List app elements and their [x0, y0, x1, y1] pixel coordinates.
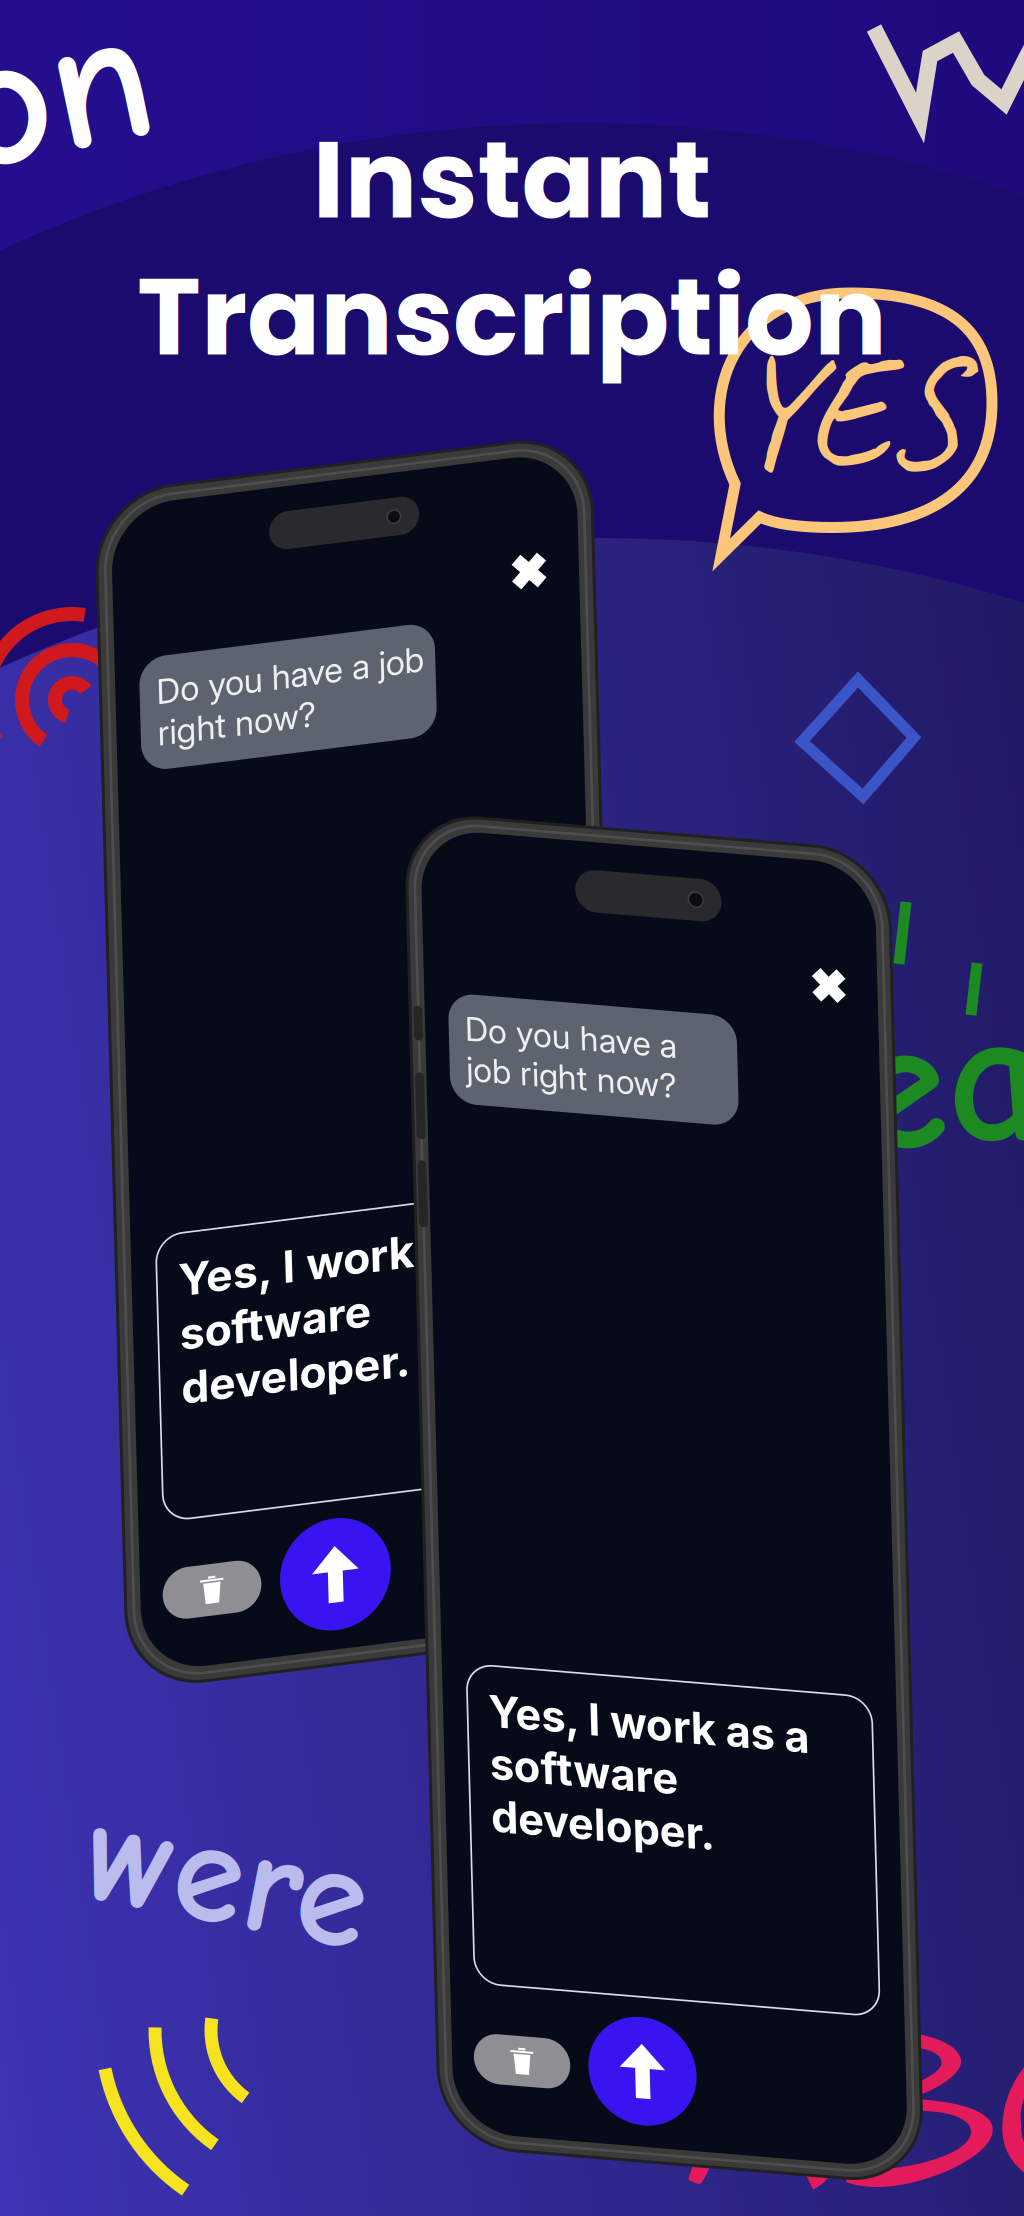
staticText: YES [729, 311, 960, 509]
button[interactable]: Delete [441, 2030, 538, 2080]
staticText: Do you have a job right now? [151, 679, 421, 761]
button[interactable]: Send [556, 2000, 665, 2109]
button[interactable]: Close [797, 921, 856, 980]
staticText: Do you have a job right now? [460, 1004, 673, 1084]
staticText: ABC [682, 1956, 1024, 2216]
staticText: on [0, 0, 151, 199]
staticText: Transcription [137, 241, 887, 392]
staticText: Yes, I work as a software developer. [465, 1680, 787, 1838]
staticText: Yes, I work as a software developer. [157, 1261, 494, 1423]
staticText: ear [854, 973, 1024, 1187]
staticText: Instant [312, 104, 711, 255]
button[interactable]: Send [251, 1545, 362, 1657]
button[interactable]: Delete [132, 1575, 232, 1627]
staticText: were [85, 1794, 370, 1960]
